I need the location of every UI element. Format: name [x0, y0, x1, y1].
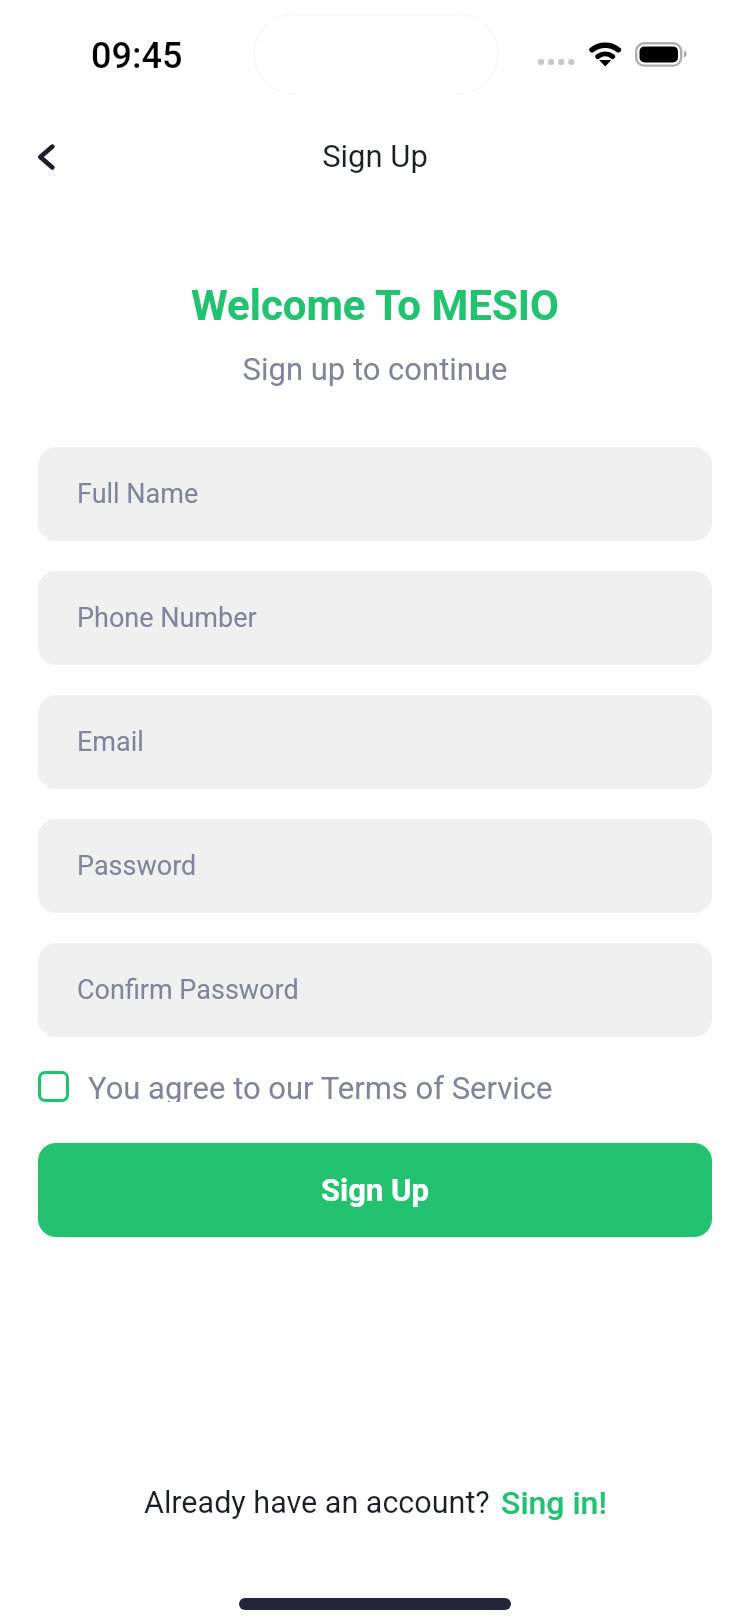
staticText: Email [77, 726, 144, 758]
button[interactable]: Confirm Password [38, 943, 712, 1037]
staticText: Welcome To MESIO [0, 281, 750, 330]
button[interactable]: Back [20, 131, 72, 183]
staticText: Sign Up [321, 1172, 429, 1208]
staticText: You agree to our Terms of Service [88, 1070, 553, 1102]
staticText: Password [77, 850, 197, 882]
button[interactable]: Sign Up [38, 1143, 712, 1237]
button[interactable]: You agree to our Terms of Service [38, 1070, 598, 1102]
button[interactable]: Sing in! [501, 1484, 607, 1522]
button[interactable]: Phone Number [38, 571, 712, 665]
staticText: Full Name [77, 478, 199, 510]
staticText: Sing in! [501, 1484, 607, 1522]
staticText: Confirm Password [77, 974, 299, 1006]
button[interactable]: Email [38, 695, 712, 789]
staticText: Phone Number [77, 602, 257, 634]
staticText: Sign Up [0, 138, 750, 174]
button[interactable]: Password [38, 819, 712, 913]
staticText: Already have an account? [144, 1485, 498, 1521]
button[interactable]: Full Name [38, 447, 712, 541]
staticText: Sign up to continue [0, 351, 750, 387]
staticText: 09:45 [91, 35, 183, 77]
